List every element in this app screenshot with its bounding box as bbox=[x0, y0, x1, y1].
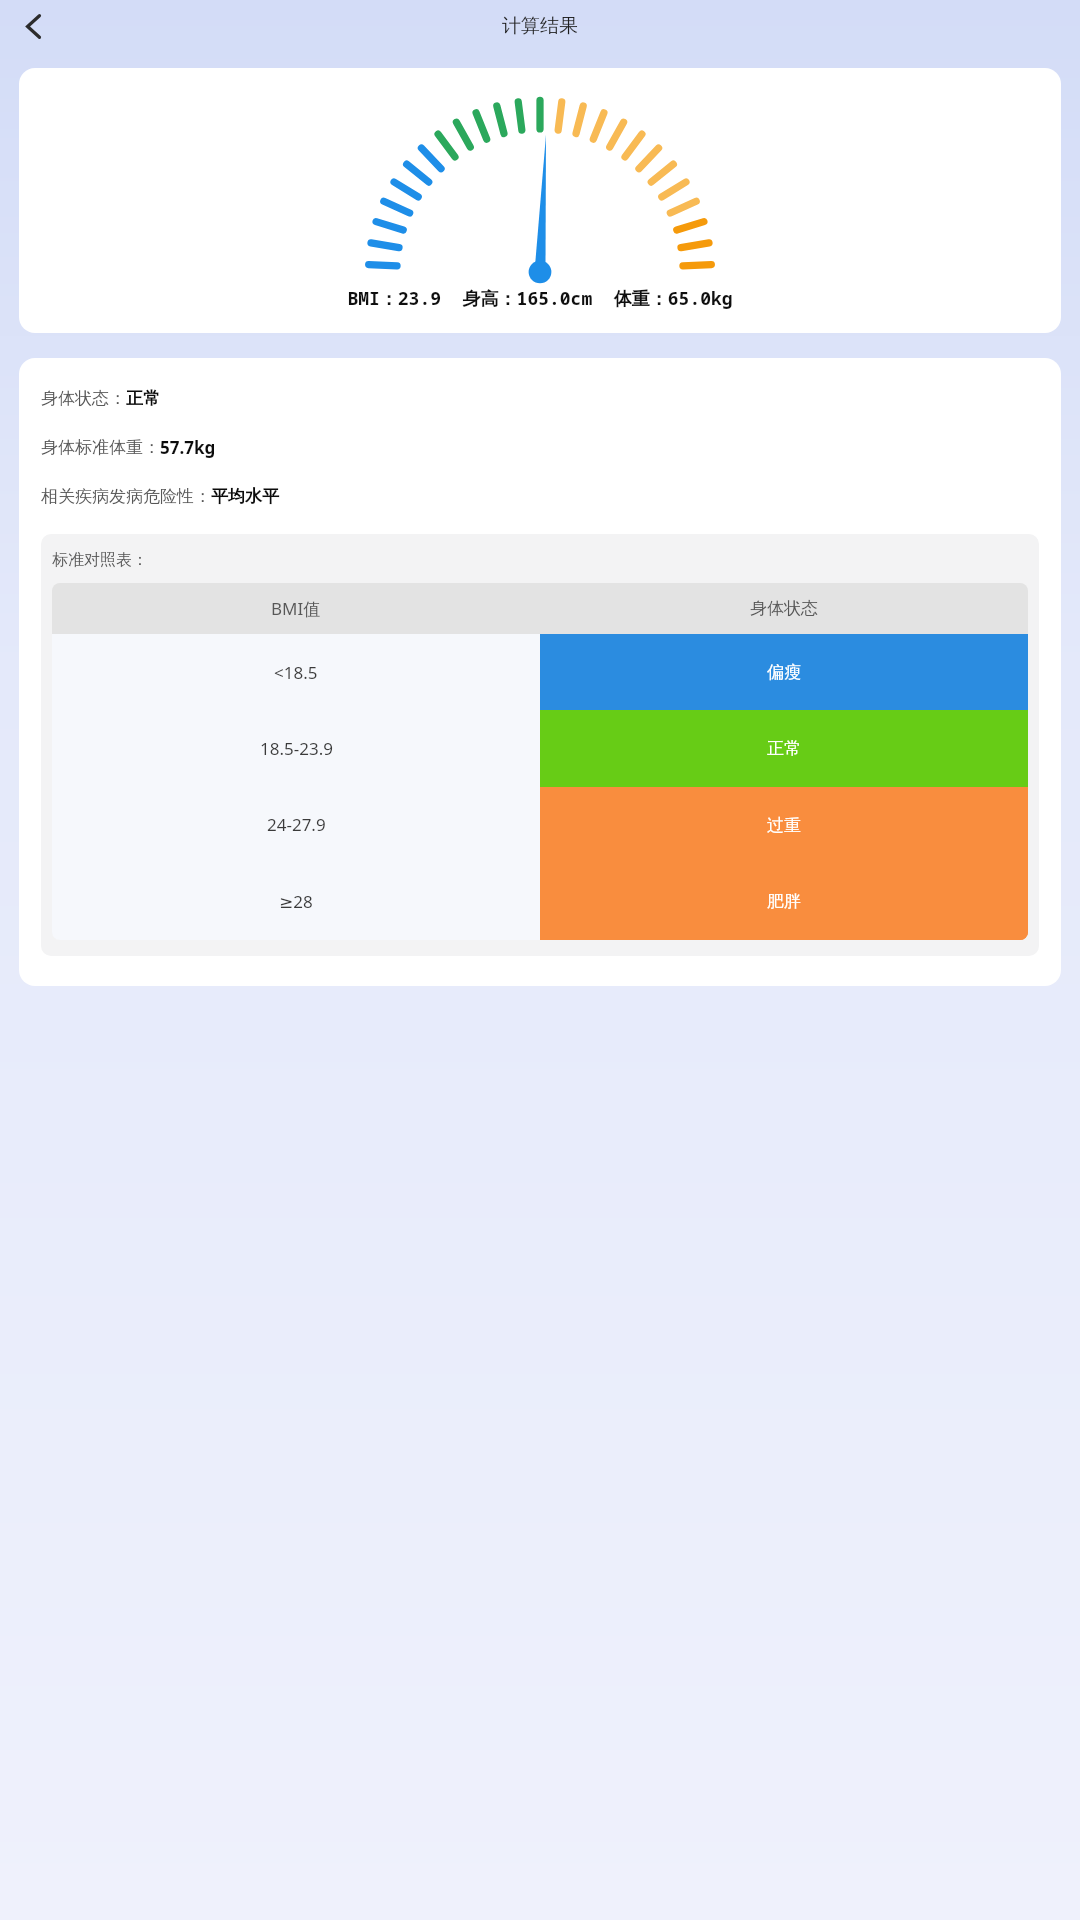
staticText: 过重 bbox=[767, 815, 801, 836]
staticText: BMI：23.9 身高：165.0cm 体重：65.0kg bbox=[19, 286, 1061, 311]
staticText: 身体标准体重： bbox=[41, 437, 160, 458]
staticText: 正常 bbox=[767, 738, 801, 759]
staticText: 平均水平 bbox=[211, 486, 279, 507]
staticText: 57.7kg bbox=[160, 436, 216, 459]
staticText: BMI值 bbox=[271, 597, 321, 620]
staticText: <18.5 bbox=[274, 661, 318, 684]
staticText: 标准对照表： bbox=[52, 550, 148, 570]
staticText: ≥28 bbox=[279, 890, 313, 913]
staticText: 身体状态： bbox=[41, 388, 126, 409]
staticText: 偏瘦 bbox=[767, 662, 801, 683]
staticText: 24-27.9 bbox=[267, 813, 326, 836]
staticText: 正常 bbox=[126, 388, 160, 409]
staticText: 肥胖 bbox=[767, 891, 801, 912]
button[interactable]: Back bbox=[10, 3, 56, 49]
staticText: 身体状态 bbox=[750, 598, 818, 619]
staticText: 计算结果 bbox=[502, 14, 578, 38]
staticText: 18.5-23.9 bbox=[260, 737, 333, 760]
staticText: 相关疾病发病危险性： bbox=[41, 486, 211, 507]
